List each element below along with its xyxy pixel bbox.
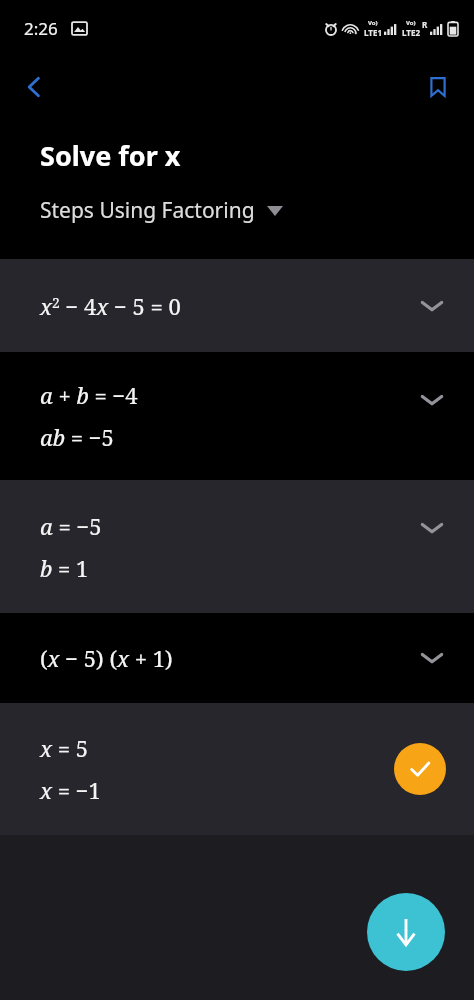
- button[interactable]: x2 − 4x − 5 = 0: [0, 259, 474, 352]
- staticText: ab = −5: [40, 422, 114, 452]
- staticText: x = −1: [40, 775, 101, 805]
- button[interactable]: Expand step: [410, 636, 454, 680]
- button[interactable]: Back: [8, 61, 60, 113]
- staticText: (x − 5) (x + 1): [40, 643, 173, 673]
- button[interactable]: Bookmark: [412, 61, 464, 113]
- staticText: LTE2: [402, 27, 420, 38]
- button[interactable]: a = −5: [0, 480, 474, 613]
- button[interactable]: Solution verified: [394, 743, 446, 795]
- staticText: Vo): [406, 19, 416, 27]
- staticText: 2:26: [24, 17, 58, 40]
- staticText: a + b = −4: [40, 380, 138, 410]
- staticText: x = 5: [40, 733, 89, 763]
- staticText: Solve for x: [40, 137, 181, 174]
- staticText: Vo): [368, 19, 378, 27]
- button[interactable]: Steps Using Factoring: [40, 196, 283, 225]
- staticText: b = 1: [40, 553, 89, 583]
- staticText: R: [422, 19, 428, 30]
- button[interactable]: x = 5: [0, 703, 474, 835]
- staticText: Steps Using Factoring: [40, 196, 255, 225]
- button[interactable]: Expand step: [410, 284, 454, 328]
- button[interactable]: (x − 5) (x + 1): [0, 613, 474, 703]
- button[interactable]: Next step, scroll down: [367, 893, 445, 971]
- staticText: a = −5: [40, 511, 102, 541]
- button[interactable]: a + b = −4: [0, 352, 474, 480]
- button[interactable]: Expand step: [410, 506, 454, 550]
- button[interactable]: Expand step: [410, 378, 454, 422]
- staticText: x2 − 4x − 5 = 0: [40, 291, 181, 321]
- staticText: LTE1: [364, 27, 382, 38]
